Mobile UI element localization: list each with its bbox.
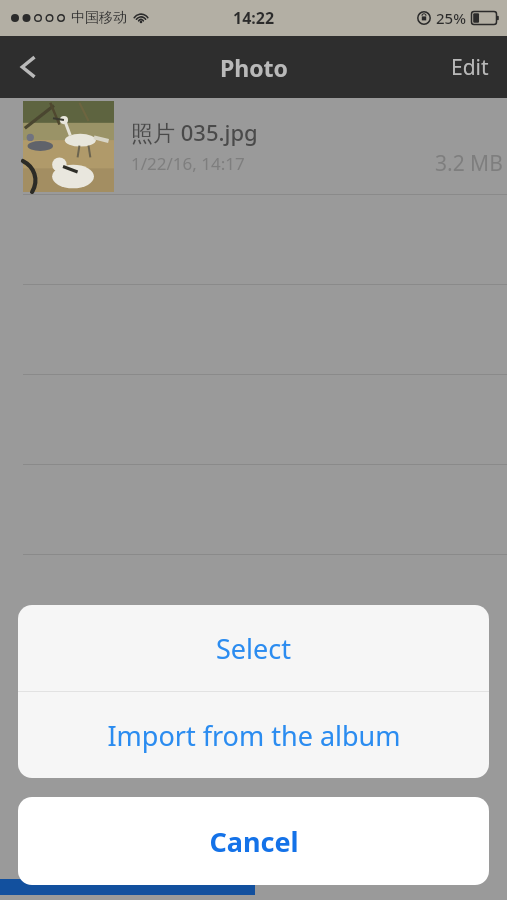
button[interactable]: Import from the album xyxy=(18,692,489,778)
staticText: 14:22 xyxy=(233,7,275,29)
staticText: Cancel xyxy=(209,823,299,860)
staticText: 1/22/16, 14:17 xyxy=(131,152,245,175)
staticText: Photo xyxy=(220,52,288,83)
staticText: Select xyxy=(216,630,291,667)
staticText: 中国移动 xyxy=(71,9,127,27)
staticText: Edit xyxy=(451,53,489,82)
staticText: Import from the album xyxy=(107,717,401,754)
button[interactable]: Cancel xyxy=(18,797,489,885)
staticText: 3.2 MB xyxy=(435,149,503,178)
button[interactable]: Edit xyxy=(433,41,507,94)
button[interactable]: Select xyxy=(18,605,489,691)
staticText: 照片 035.jpg xyxy=(131,117,258,147)
button[interactable]: 照片 035.jpg xyxy=(0,98,507,194)
button[interactable] xyxy=(0,554,507,644)
staticText: 25% xyxy=(436,8,466,28)
button[interactable]: Back xyxy=(0,39,56,95)
